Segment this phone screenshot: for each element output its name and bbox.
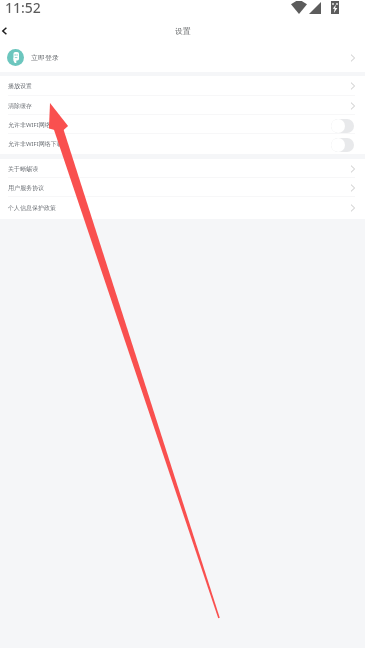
staticText: 11:52	[5, 0, 41, 17]
button[interactable]: 用户服务协议	[0, 178, 365, 197]
button[interactable]: 关于蜥蜴读	[0, 159, 365, 178]
staticText: 允许非WIFI网络播放	[8, 121, 63, 129]
button[interactable]: 允许非WIFI网络下载	[0, 134, 365, 154]
staticText: 个人信息保护政策	[8, 204, 56, 212]
button[interactable]: 允许非WIFI网络播放	[0, 115, 365, 134]
staticText: 设置	[175, 26, 191, 36]
staticText: 关于蜥蜴读	[8, 165, 38, 173]
staticText: 用户服务协议	[8, 184, 44, 192]
button[interactable]: 立即登录	[0, 41, 365, 72]
button[interactable]: Back	[0, 20, 9, 41]
button[interactable]: Toggle	[331, 138, 354, 152]
staticText: 播放设置	[8, 82, 32, 90]
staticText: 清除缓存	[8, 102, 32, 110]
staticText: 允许非WIFI网络下载	[8, 140, 63, 148]
button[interactable]: 个人信息保护政策	[0, 197, 365, 219]
button[interactable]: Toggle	[331, 119, 354, 133]
button[interactable]: 播放设置	[0, 76, 365, 96]
button[interactable]: 清除缓存	[0, 96, 365, 115]
staticText: 立即登录	[31, 53, 59, 62]
